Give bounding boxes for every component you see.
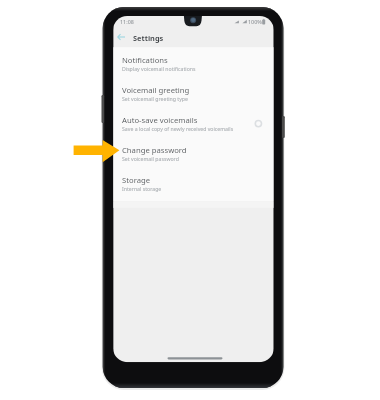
button[interactable]: Change password	[113, 140, 273, 170]
button[interactable]: Back	[114, 30, 127, 43]
button[interactable]: Voicemail greeting	[113, 80, 273, 110]
staticText: Set voicemail greeting type	[122, 95, 188, 102]
staticText: Voicemail greeting	[122, 85, 190, 95]
staticText: Storage	[122, 175, 151, 185]
staticText: Internal storage	[122, 185, 162, 192]
staticText: 100%	[248, 18, 262, 25]
staticText: Change password	[122, 145, 187, 155]
staticText: Display voicemail notifications	[122, 65, 196, 72]
button[interactable]: Auto-save voicemails	[113, 110, 273, 140]
staticText: Notifications	[122, 55, 168, 65]
staticText: 11:08	[120, 18, 134, 25]
button[interactable]: Notifications	[113, 50, 273, 80]
staticText: Auto-save voicemails	[122, 115, 198, 125]
button[interactable]: Storage	[113, 170, 273, 200]
staticText: Save a local copy of newly received voic…	[122, 125, 234, 132]
staticText: Settings	[133, 33, 164, 43]
staticText: Set voicemail password	[122, 155, 179, 162]
